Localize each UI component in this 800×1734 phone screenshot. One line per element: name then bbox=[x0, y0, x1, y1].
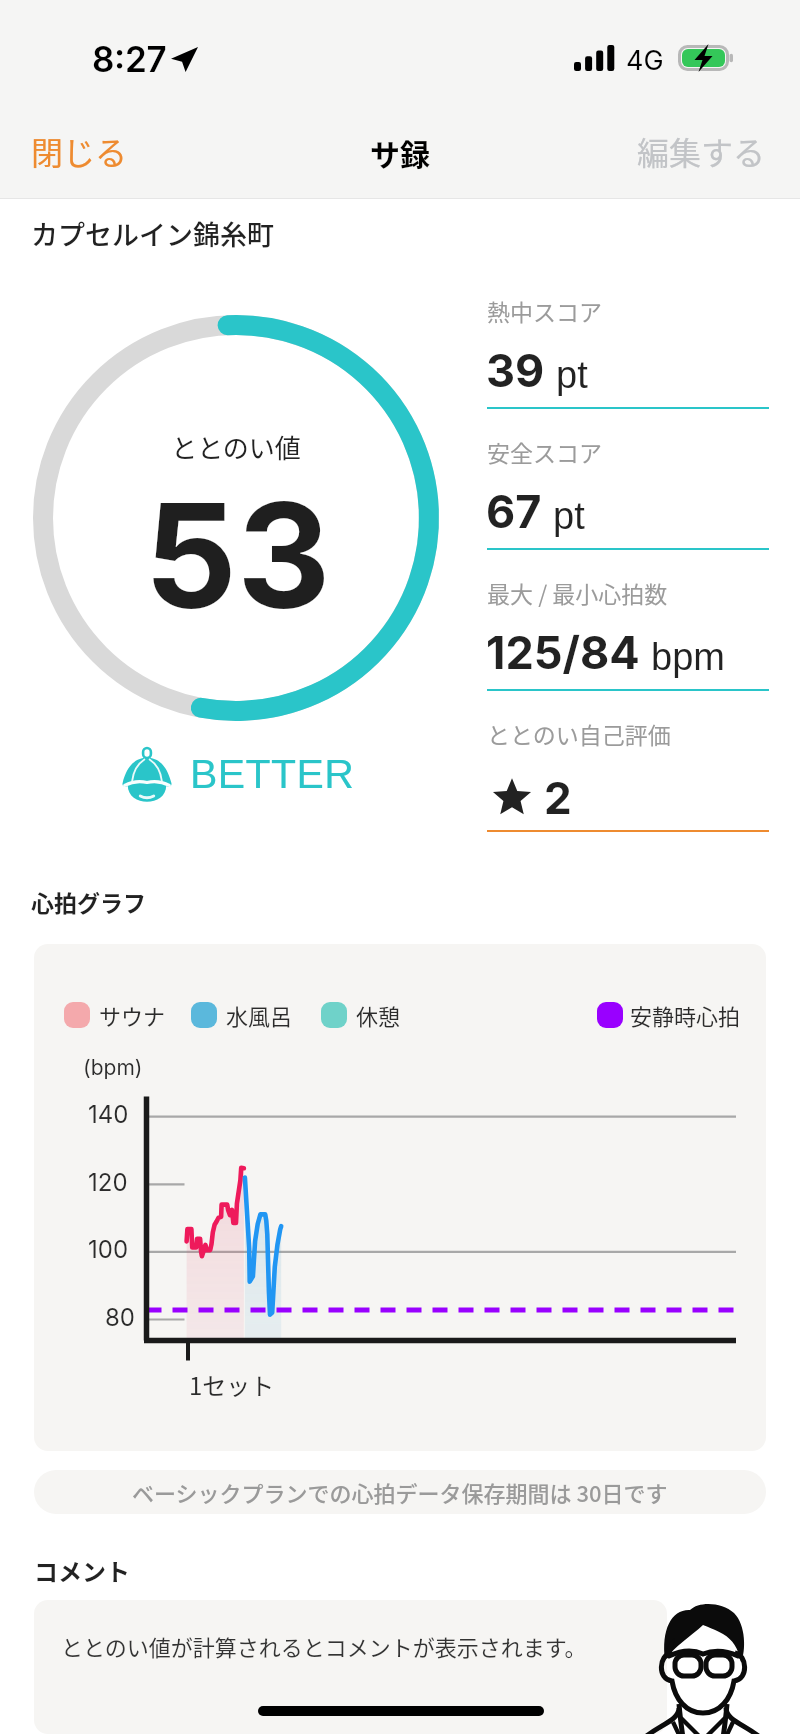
staticText: 2 bbox=[544, 771, 572, 824]
staticText: 安全スコア bbox=[487, 435, 602, 468]
staticText: ととのい値 bbox=[171, 428, 301, 466]
staticText: コメント bbox=[34, 1553, 130, 1588]
staticText: 8:27 bbox=[92, 38, 167, 80]
staticText: bpm bbox=[651, 636, 725, 678]
staticText: 水風呂 bbox=[226, 999, 293, 1031]
staticText: 安静時心拍 bbox=[630, 999, 741, 1031]
staticText: 120 bbox=[88, 1168, 128, 1197]
staticText: BETTER bbox=[190, 751, 355, 797]
staticText: ととのい値が計算されるとコメントが表示されます。 bbox=[61, 1630, 587, 1662]
staticText: pt bbox=[556, 354, 588, 396]
staticText: 125/84 bbox=[486, 625, 640, 679]
staticText: pt bbox=[553, 495, 585, 537]
staticText: 80 bbox=[105, 1303, 135, 1332]
staticText: 1セット bbox=[189, 1367, 275, 1402]
staticText: 140 bbox=[88, 1100, 129, 1129]
button[interactable]: 編集する bbox=[626, 123, 776, 179]
staticText: 67 bbox=[486, 484, 542, 538]
staticText: ベーシックプランでの心拍データ保存期間は 30日です bbox=[132, 1476, 668, 1508]
button[interactable]: 閉じる bbox=[18, 123, 140, 179]
staticText: カプセルイン錦糸町 bbox=[31, 214, 274, 253]
staticText: サ録 bbox=[370, 131, 430, 174]
staticText: 53 bbox=[144, 468, 331, 643]
staticText: 最大 / 最小心拍数 bbox=[487, 576, 668, 609]
staticText: 39 bbox=[486, 343, 545, 397]
staticText: 閉じる bbox=[31, 128, 128, 174]
staticText: サウナ bbox=[99, 999, 166, 1031]
staticText: 心拍グラフ bbox=[31, 885, 146, 918]
staticText: (bpm) bbox=[83, 1055, 143, 1080]
staticText: ととのい自己評価 bbox=[487, 717, 671, 750]
staticText: 100 bbox=[88, 1235, 129, 1264]
staticText: 休憩 bbox=[356, 999, 401, 1031]
staticText: 編集する bbox=[637, 128, 766, 174]
staticText: 4G bbox=[626, 44, 664, 77]
staticText: 熱中スコア bbox=[487, 294, 602, 327]
